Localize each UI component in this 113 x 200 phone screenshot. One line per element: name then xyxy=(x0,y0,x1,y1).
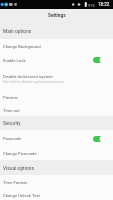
staticText: Change Background xyxy=(3,44,41,49)
button[interactable]: Time out xyxy=(0,104,113,116)
button[interactable]: Disable lockscreen system xyxy=(0,67,113,90)
staticText: Settings xyxy=(48,13,66,19)
button[interactable]: Change Passcode xyxy=(0,147,113,160)
staticText: Enable Lock xyxy=(3,58,26,63)
staticText: Time Format xyxy=(3,180,27,185)
staticText: Not able to disable system lockscreen xyxy=(3,80,64,84)
button[interactable]: Change Background xyxy=(0,39,113,53)
staticText: Disable lockscreen system xyxy=(3,74,53,79)
button[interactable]: Passcode xyxy=(0,130,113,147)
button[interactable]: Time Format xyxy=(0,175,113,190)
staticText: Change Passcode xyxy=(3,151,37,156)
staticText: 18:22 xyxy=(98,2,110,7)
staticText: Main options xyxy=(3,28,32,34)
staticText: Time out xyxy=(3,108,20,113)
staticText: Preview xyxy=(3,95,18,100)
button[interactable]: Preview xyxy=(0,90,113,104)
staticText: Change Unlock Text xyxy=(3,193,40,198)
staticText: Passcode xyxy=(3,136,22,141)
staticText: 97% xyxy=(88,3,96,7)
button[interactable]: Toggle Enable Lock xyxy=(93,57,106,63)
button[interactable]: Toggle Passcode xyxy=(93,136,106,142)
staticText: Security xyxy=(3,120,21,126)
button[interactable]: Change Unlock Text xyxy=(0,190,113,200)
staticText: Visual options xyxy=(3,165,34,171)
button[interactable]: Enable Lock xyxy=(0,53,113,67)
